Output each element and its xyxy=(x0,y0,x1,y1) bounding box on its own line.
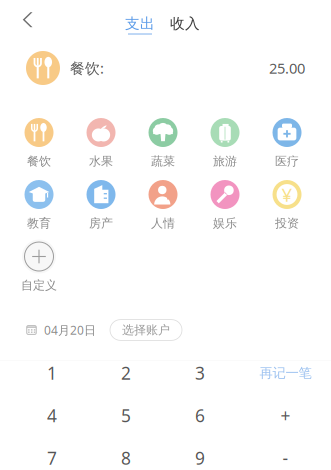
staticText: 支出 xyxy=(125,14,155,32)
button[interactable]: 房产 xyxy=(70,180,132,242)
button[interactable]: 收入 xyxy=(165,7,205,41)
staticText: 选择账户 xyxy=(122,323,170,337)
staticText: 蔬菜 xyxy=(151,154,175,169)
staticText: 教育 xyxy=(27,216,51,231)
staticText: 餐饮 xyxy=(27,154,51,169)
button[interactable]: 8 xyxy=(89,437,163,470)
button[interactable]: 教育 xyxy=(8,180,70,242)
button[interactable]: 9 xyxy=(163,437,237,470)
staticText: 04月20日 xyxy=(44,322,96,338)
staticText: + xyxy=(280,404,290,427)
staticText: 房产 xyxy=(89,216,113,231)
button[interactable]: 支出 xyxy=(120,7,160,41)
button[interactable]: 3 xyxy=(163,352,237,394)
button[interactable]: 医疗 xyxy=(256,118,318,180)
button[interactable]: 娱乐 xyxy=(194,180,256,242)
staticText: 医疗 xyxy=(275,154,299,169)
button[interactable]: 旅游 xyxy=(194,118,256,180)
button[interactable]: Back xyxy=(0,0,46,40)
staticText: 1 xyxy=(47,362,57,385)
button[interactable]: 水果 xyxy=(70,118,132,180)
staticText: 收入 xyxy=(170,14,200,32)
staticText: 自定义 xyxy=(21,278,57,293)
button[interactable]: 再记一笔 xyxy=(237,352,331,394)
button[interactable]: 自定义 xyxy=(8,242,70,304)
staticText: 8 xyxy=(121,446,131,469)
staticText: 9 xyxy=(195,446,205,469)
staticText: 7 xyxy=(47,446,57,469)
button[interactable]: 选择账户 xyxy=(110,320,182,340)
staticText: - xyxy=(282,446,288,469)
staticText: 25.00 xyxy=(269,58,305,78)
staticText: 旅游 xyxy=(213,154,237,169)
button[interactable]: 6 xyxy=(163,394,237,437)
button[interactable]: + xyxy=(237,394,331,437)
staticText: 投资 xyxy=(275,216,299,231)
button[interactable]: 5 xyxy=(89,394,163,437)
button[interactable]: 2 xyxy=(89,352,163,394)
staticText: 再记一笔 xyxy=(259,365,311,381)
staticText: ¥ xyxy=(281,182,292,207)
button[interactable]: 餐饮 xyxy=(8,118,70,180)
staticText: 水果 xyxy=(89,154,113,169)
staticText: 4 xyxy=(47,404,57,427)
staticText: 2 xyxy=(121,362,131,385)
button[interactable]: 04月20日 xyxy=(26,322,96,338)
staticText: 人情 xyxy=(151,216,175,231)
staticText: 娱乐 xyxy=(213,216,237,231)
staticText: 3 xyxy=(195,362,205,385)
button[interactable]: ¥ xyxy=(256,180,318,242)
staticText: 6 xyxy=(195,404,205,427)
button[interactable]: 4 xyxy=(15,394,89,437)
staticText: 5 xyxy=(121,404,131,427)
button[interactable]: 蔬菜 xyxy=(132,118,194,180)
button[interactable]: 人情 xyxy=(132,180,194,242)
staticText: 餐饮: xyxy=(70,58,104,78)
button[interactable]: 1 xyxy=(15,352,89,394)
button[interactable]: 7 xyxy=(15,437,89,470)
button[interactable]: - xyxy=(237,437,331,470)
